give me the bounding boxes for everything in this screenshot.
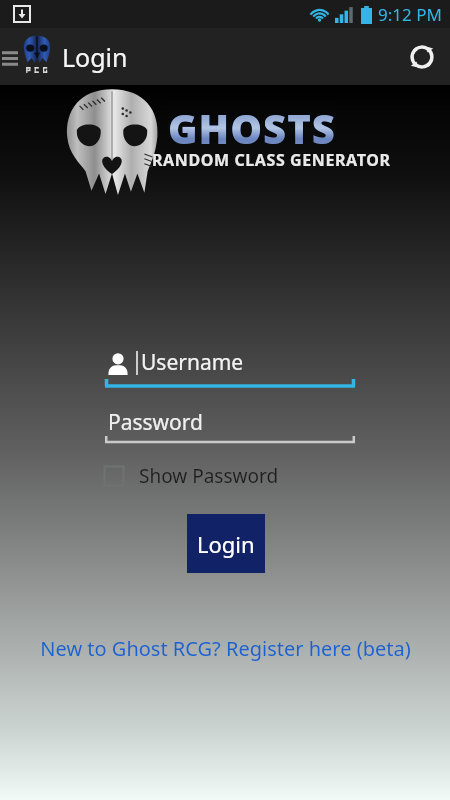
button[interactable]: Show Password [103, 460, 279, 492]
button[interactable]: New to Ghost RCG? Register here (beta) [0, 628, 450, 668]
button[interactable]: Refresh [393, 28, 450, 85]
button[interactable]: Username [105, 348, 355, 388]
staticText: Username [141, 348, 244, 377]
button[interactable]: Login [187, 514, 265, 573]
staticText: Show Password [139, 463, 279, 489]
staticText: 9:12 PM [378, 3, 442, 26]
other: Open navigation drawer [2, 48, 18, 66]
staticText: RANDOM CLASS GENERATOR [152, 149, 391, 171]
button[interactable]: Open navigation drawer [0, 28, 128, 85]
staticText: Login [62, 40, 128, 74]
staticText: Login [197, 529, 255, 559]
staticText: New to Ghost RCG? Register here (beta) [40, 635, 411, 662]
staticText: Password [108, 408, 203, 437]
staticText: GHOSTS [168, 101, 336, 155]
button[interactable]: Password [105, 408, 355, 444]
